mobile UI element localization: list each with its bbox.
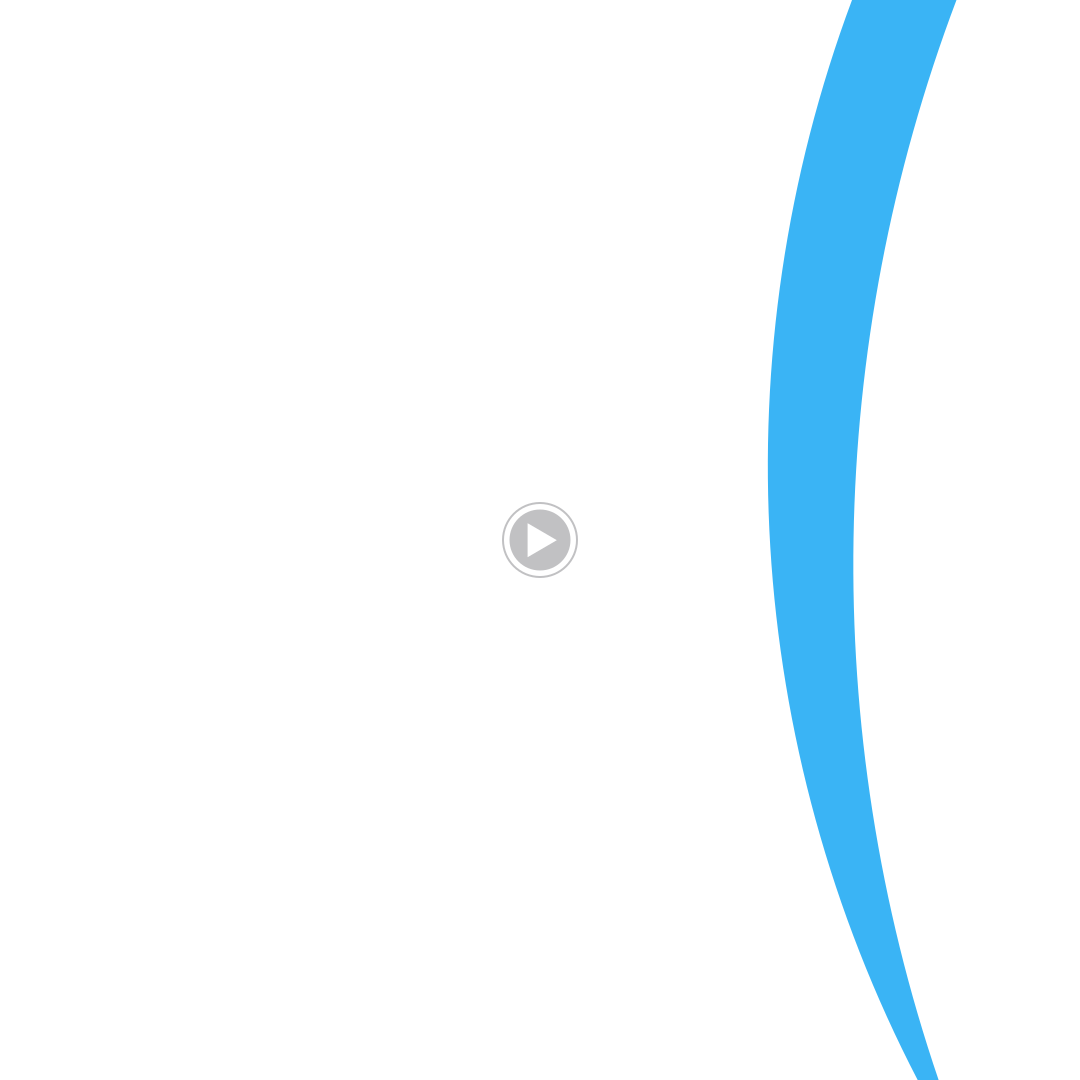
button[interactable]: Play — [503, 503, 577, 577]
